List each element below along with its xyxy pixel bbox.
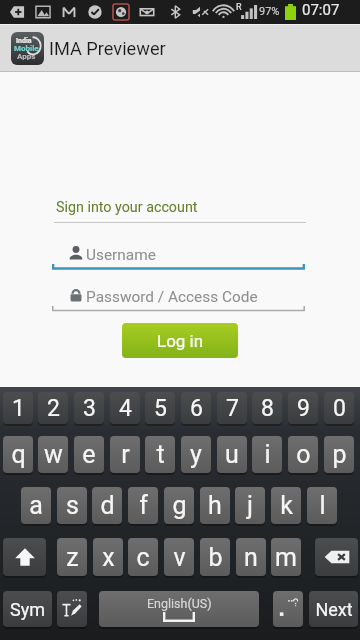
staticText: India <box>16 37 32 45</box>
button[interactable]: r <box>110 436 140 473</box>
button[interactable]: Shift <box>3 538 46 576</box>
button[interactable]: p <box>324 436 354 473</box>
staticText: 9 <box>297 395 310 422</box>
staticText: j <box>247 491 253 520</box>
button[interactable]: Sym <box>3 591 52 627</box>
button[interactable]: i <box>252 436 282 473</box>
staticText: d <box>100 491 115 520</box>
button[interactable]: o <box>288 436 318 473</box>
staticText: Next <box>315 599 353 620</box>
button[interactable]: u <box>217 436 247 473</box>
button[interactable]: Password / Access Code <box>52 282 305 312</box>
staticText: 0 <box>333 395 346 422</box>
staticText: f <box>139 491 148 520</box>
button[interactable]: d <box>92 487 122 524</box>
button[interactable]: 4 <box>110 392 140 424</box>
staticText: n <box>244 543 258 572</box>
staticText: Username <box>86 246 156 264</box>
staticText: Mobile <box>14 44 39 53</box>
button[interactable]: k <box>271 487 301 524</box>
staticText: 1 <box>12 395 25 422</box>
staticText: R <box>236 2 242 13</box>
button[interactable]: Log in <box>122 323 238 358</box>
button[interactable]: v <box>164 538 194 576</box>
button[interactable]: 9 <box>288 392 318 424</box>
staticText: 07:07 <box>302 1 340 19</box>
button[interactable]: x <box>93 538 123 576</box>
button[interactable]: 0 <box>324 392 354 424</box>
button[interactable]: Backspace <box>315 538 358 576</box>
button[interactable]: t <box>145 436 175 473</box>
button[interactable]: Next <box>309 591 358 627</box>
staticText: r <box>121 440 130 469</box>
button[interactable]: e <box>74 436 104 473</box>
staticText: b <box>208 543 223 572</box>
staticText: x <box>102 543 115 572</box>
staticText: m <box>275 543 297 572</box>
button[interactable]: 3 <box>74 392 104 424</box>
staticText: h <box>208 491 222 520</box>
button[interactable]: Punctuation <box>273 591 303 627</box>
button[interactable]: 7 <box>217 392 247 424</box>
staticText: o <box>296 440 311 469</box>
staticText: y <box>190 440 202 469</box>
staticText: English(US) <box>147 596 212 611</box>
staticText: q <box>11 440 26 469</box>
button[interactable]: h <box>200 487 230 524</box>
staticText: k <box>280 491 293 520</box>
button[interactable]: f <box>128 487 158 524</box>
staticText: 3 <box>83 395 96 422</box>
button[interactable]: j <box>235 487 265 524</box>
staticText: w <box>44 440 63 469</box>
button[interactable]: b <box>200 538 230 576</box>
button[interactable]: q <box>3 436 33 473</box>
button[interactable]: Username <box>52 240 305 270</box>
button[interactable]: 5 <box>145 392 175 424</box>
button[interactable]: n <box>236 538 266 576</box>
button[interactable]: English(US) <box>99 591 259 627</box>
button[interactable]: g <box>164 487 194 524</box>
staticText: Sym <box>10 599 45 620</box>
staticText: p <box>332 440 347 469</box>
staticText: v <box>173 543 186 572</box>
button[interactable]: 1 <box>3 392 33 424</box>
button[interactable]: m <box>271 538 301 576</box>
staticText: i <box>264 440 271 469</box>
staticText: Password / Access Code <box>86 288 258 306</box>
staticText: e <box>82 440 96 469</box>
button[interactable]: 8 <box>252 392 282 424</box>
button[interactable]: c <box>128 538 158 576</box>
staticText: 2 <box>47 395 60 422</box>
button[interactable]: w <box>38 436 68 473</box>
staticText: 5 <box>154 395 167 422</box>
staticText: Log in <box>157 331 204 351</box>
button[interactable]: a <box>21 487 51 524</box>
staticText: 8 <box>261 395 274 422</box>
button[interactable]: z <box>57 538 87 576</box>
staticText: l <box>319 491 326 520</box>
staticText: g <box>172 491 187 520</box>
button[interactable]: y <box>181 436 211 473</box>
staticText: Apps <box>17 52 36 61</box>
staticText: IMA Previewer <box>49 38 166 59</box>
staticText: 7 <box>226 395 239 422</box>
staticText: 4 <box>119 395 132 422</box>
staticText: t <box>156 440 165 469</box>
button[interactable]: 6 <box>181 392 211 424</box>
button[interactable]: s <box>57 487 87 524</box>
staticText: a <box>29 491 43 520</box>
staticText: c <box>136 543 150 572</box>
staticText: 97% <box>259 5 280 18</box>
button[interactable]: l <box>307 487 337 524</box>
staticText: s <box>66 491 79 520</box>
staticText: Sign into your account <box>56 199 198 216</box>
button[interactable]: 2 <box>38 392 68 424</box>
staticText: 6 <box>190 395 203 422</box>
staticText: z <box>66 543 79 572</box>
button[interactable]: Change input method <box>57 591 87 627</box>
staticText: u <box>225 440 239 469</box>
